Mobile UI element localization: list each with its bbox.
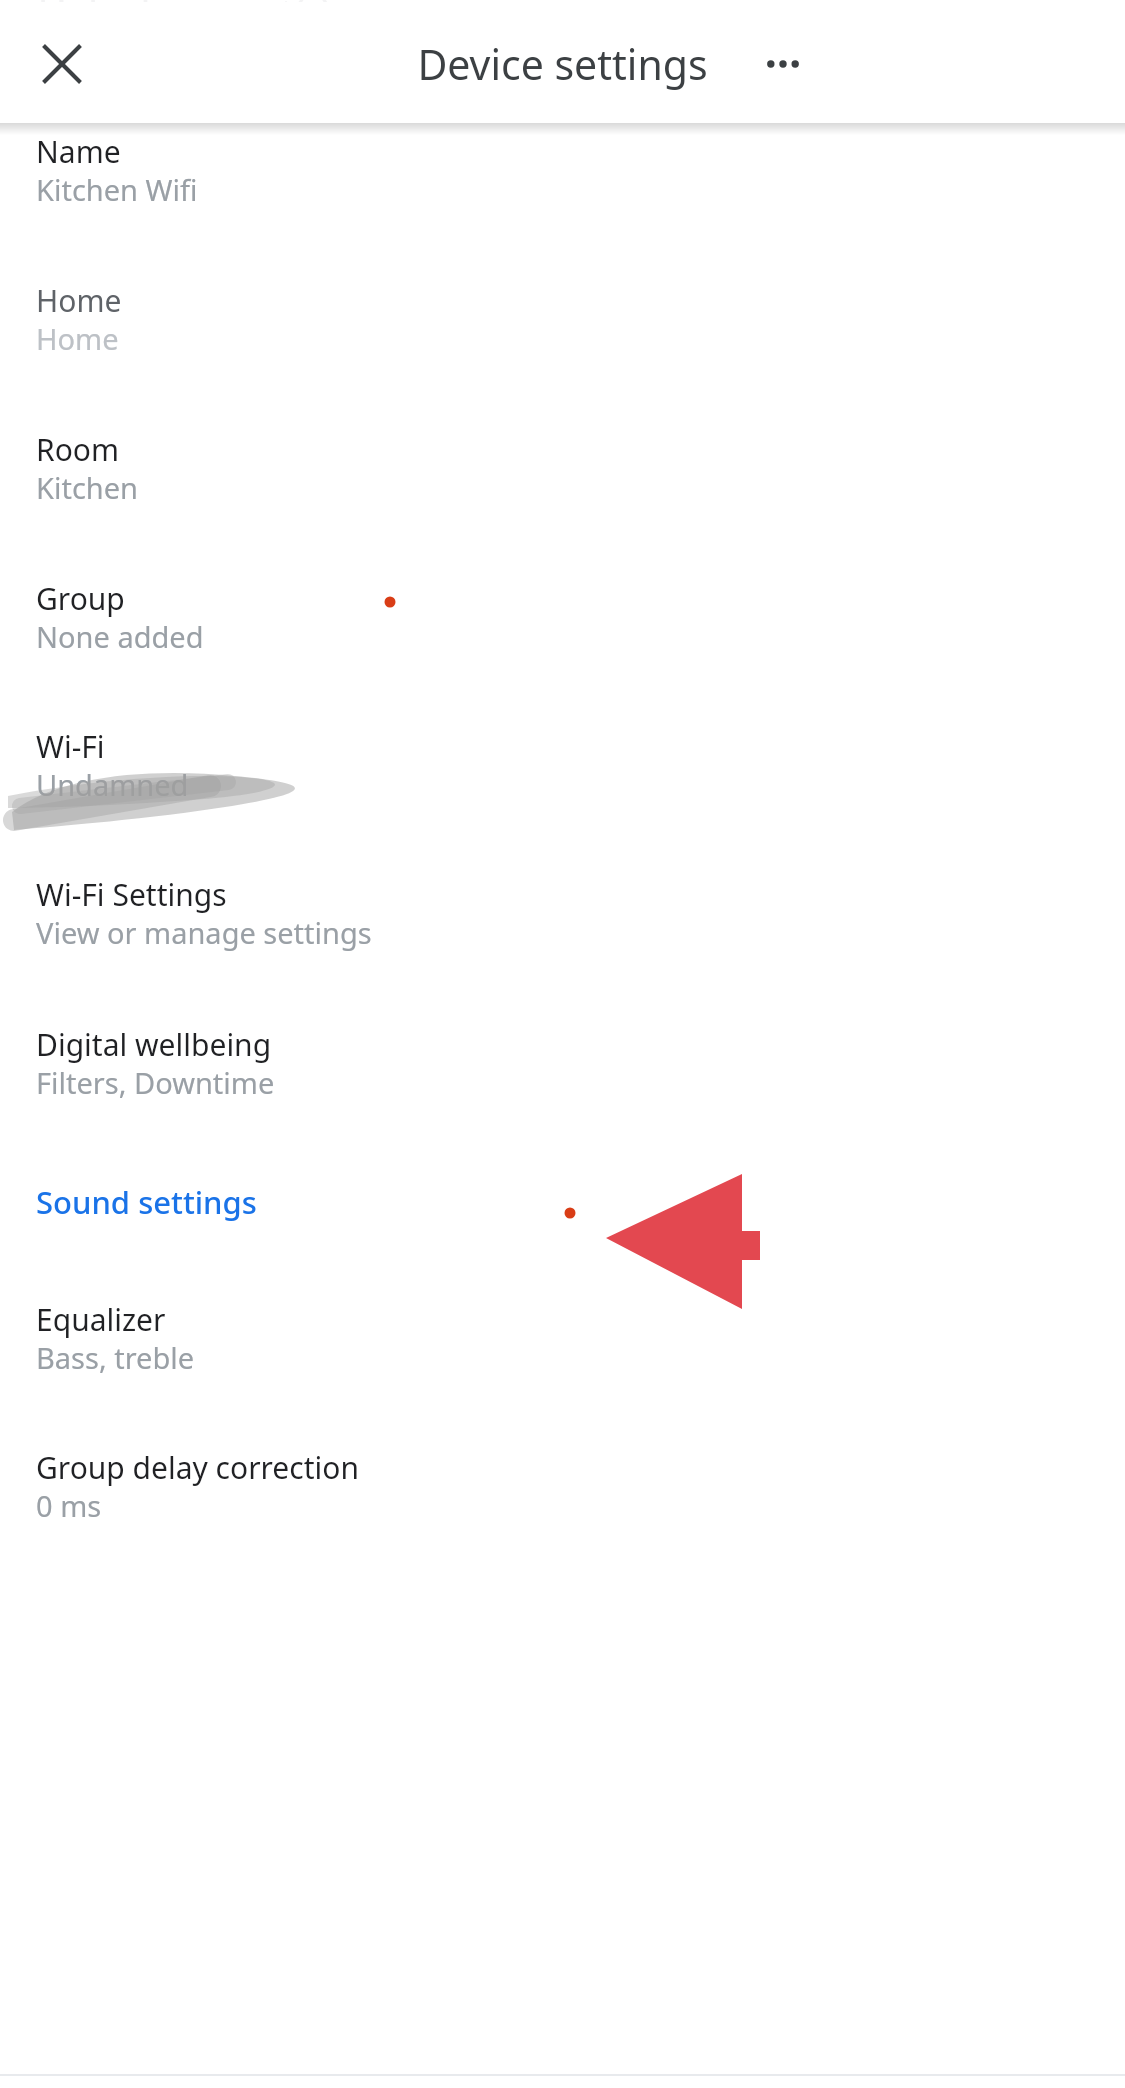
staticText: Home [36,280,122,321]
staticText: View or manage settings [36,913,372,952]
staticText: Kitchen [36,468,139,507]
staticText: None added [36,617,204,656]
button[interactable] [0,1440,1125,1595]
button[interactable] [0,719,1125,868]
staticText: Name [36,131,121,172]
staticText: Digital wellbeing [36,1024,272,1065]
button[interactable] [0,1291,1125,1440]
staticText: Device settings [0,36,1125,2088]
staticText: 0 ms [36,1486,102,1525]
button[interactable]: More options [741,22,825,106]
staticText: Undamned [36,765,189,804]
button[interactable] [0,421,1125,570]
staticText: Kitchen Wifi [36,170,198,209]
staticText: Group delay correction [36,1447,359,1488]
staticText: Filters, Downtime [36,1063,275,1102]
button[interactable] [0,272,1125,421]
button[interactable] [0,1017,1125,1172]
staticText: Sound settings [36,1181,257,1223]
staticText: Equalizer [36,1299,166,1340]
staticText: Bass, treble [36,1338,195,1377]
button[interactable] [0,123,1125,272]
button[interactable] [0,868,1125,1017]
button[interactable]: Close [20,22,104,106]
staticText: samjolman@me.com [38,34,365,79]
button[interactable] [0,1163,1125,1281]
staticText: Home [36,319,119,358]
button[interactable] [0,570,1125,719]
staticText: Room [36,429,120,470]
staticText: Wi-Fi Settings [36,874,227,915]
staticText: Wi-Fi [36,726,105,767]
staticText: Group [36,578,125,619]
